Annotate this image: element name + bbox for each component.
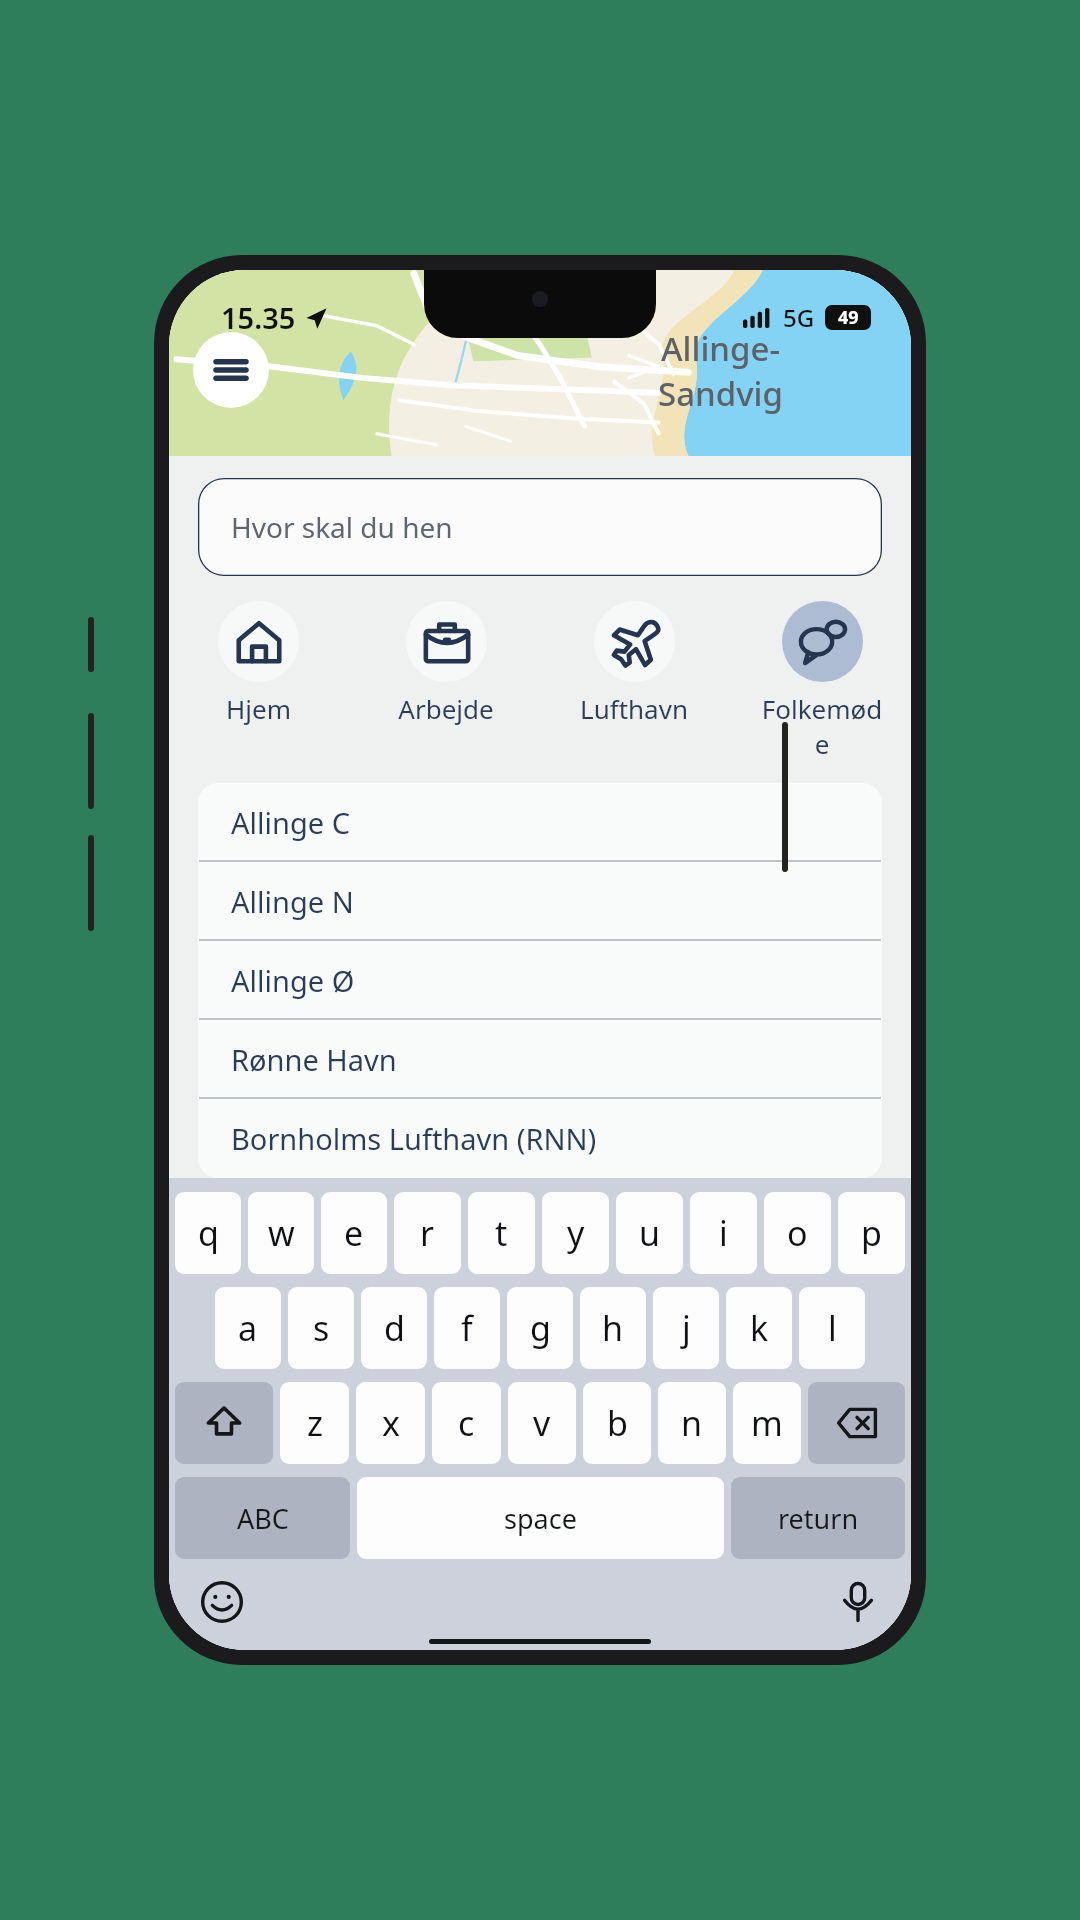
staticText: 15.35 <box>221 298 296 337</box>
staticText: f <box>461 1305 473 1351</box>
button[interactable]: b <box>583 1382 651 1464</box>
staticText: n <box>681 1400 703 1446</box>
staticText: e <box>344 1210 364 1256</box>
staticText: q <box>198 1210 219 1256</box>
button[interactable]: Backspace <box>808 1382 905 1464</box>
button[interactable]: o <box>764 1192 831 1274</box>
staticText: Allinge N <box>231 882 354 921</box>
button[interactable]: d <box>361 1287 427 1369</box>
staticText: Rønne Havn <box>231 1040 397 1079</box>
button[interactable]: i <box>690 1192 757 1274</box>
button[interactable]: g <box>507 1287 573 1369</box>
staticText: w <box>268 1210 295 1256</box>
button[interactable]: v <box>508 1382 576 1464</box>
button[interactable]: space <box>357 1477 724 1559</box>
button[interactable]: Bornholms Lufthavn (RNN) <box>198 1099 882 1178</box>
button[interactable]: Emoji <box>199 1579 245 1625</box>
staticText: m <box>751 1400 783 1446</box>
button[interactable]: l <box>799 1287 865 1369</box>
button[interactable]: m <box>733 1382 801 1464</box>
button[interactable]: h <box>580 1287 646 1369</box>
button[interactable]: k <box>726 1287 792 1369</box>
staticText: 5G <box>783 301 815 334</box>
staticText: Bornholms Lufthavn (RNN) <box>231 1119 597 1158</box>
staticText: Folkemøde <box>759 691 885 761</box>
staticText: o <box>787 1210 808 1256</box>
button[interactable]: j <box>653 1287 719 1369</box>
staticText: Allinge Ø <box>231 961 355 1000</box>
button[interactable]: return <box>731 1477 905 1559</box>
staticText: 49 <box>838 305 859 330</box>
button[interactable]: q <box>175 1192 241 1274</box>
staticText: x <box>382 1400 400 1446</box>
staticText: y <box>567 1210 585 1256</box>
button[interactable]: Allinge Ø <box>198 941 882 1020</box>
staticText: Hvor skal du hen <box>231 508 453 546</box>
staticText: i <box>719 1210 728 1256</box>
staticText: Sandvig <box>658 371 783 416</box>
staticText: u <box>639 1210 661 1256</box>
button[interactable]: Lufthavn <box>571 601 697 726</box>
staticText: Hjem <box>226 691 291 726</box>
button[interactable]: w <box>248 1192 314 1274</box>
staticText: c <box>458 1400 475 1446</box>
button[interactable]: Arbejde <box>383 601 509 726</box>
staticText: Allinge- <box>661 326 781 371</box>
button[interactable]: Dictation <box>835 1579 881 1625</box>
staticText: p <box>861 1210 882 1256</box>
staticText: k <box>750 1305 769 1351</box>
staticText: l <box>828 1305 837 1351</box>
button[interactable]: Menu <box>193 332 269 408</box>
button[interactable]: t <box>468 1192 535 1274</box>
staticText: z <box>307 1400 323 1446</box>
staticText: a <box>238 1305 258 1351</box>
button[interactable]: y <box>542 1192 609 1274</box>
button[interactable]: Shift <box>175 1382 273 1464</box>
button[interactable]: e <box>321 1192 387 1274</box>
button[interactable]: Hvor skal du hen <box>198 478 882 576</box>
staticText: h <box>602 1305 624 1351</box>
button[interactable]: n <box>658 1382 726 1464</box>
button[interactable]: Folkemøde <box>759 601 885 761</box>
button[interactable]: a <box>215 1287 281 1369</box>
staticText: return <box>778 1500 859 1537</box>
staticText: r <box>420 1210 435 1256</box>
button[interactable]: x <box>356 1382 425 1464</box>
staticText: t <box>495 1210 508 1256</box>
button[interactable]: Allinge C <box>198 783 882 862</box>
button[interactable]: Rønne Havn <box>198 1020 882 1099</box>
staticText: space <box>504 1500 577 1537</box>
button[interactable]: f <box>434 1287 500 1369</box>
staticText: b <box>607 1400 628 1446</box>
button[interactable]: c <box>432 1382 501 1464</box>
button[interactable]: s <box>288 1287 354 1369</box>
staticText: j <box>682 1305 691 1351</box>
button[interactable]: r <box>394 1192 461 1274</box>
staticText: Arbejde <box>398 691 494 726</box>
staticText: Lufthavn <box>580 691 688 726</box>
staticText: ABC <box>237 1500 289 1537</box>
button[interactable]: u <box>616 1192 683 1274</box>
staticText: g <box>530 1305 551 1351</box>
staticText: v <box>533 1400 551 1446</box>
button[interactable]: z <box>280 1382 349 1464</box>
staticText: Allinge C <box>231 803 350 842</box>
staticText: s <box>313 1305 330 1351</box>
button[interactable]: Hjem <box>195 601 321 726</box>
button[interactable]: p <box>838 1192 905 1274</box>
staticText: d <box>384 1305 405 1351</box>
button[interactable]: ABC <box>175 1477 350 1559</box>
button[interactable]: Allinge N <box>198 862 882 941</box>
